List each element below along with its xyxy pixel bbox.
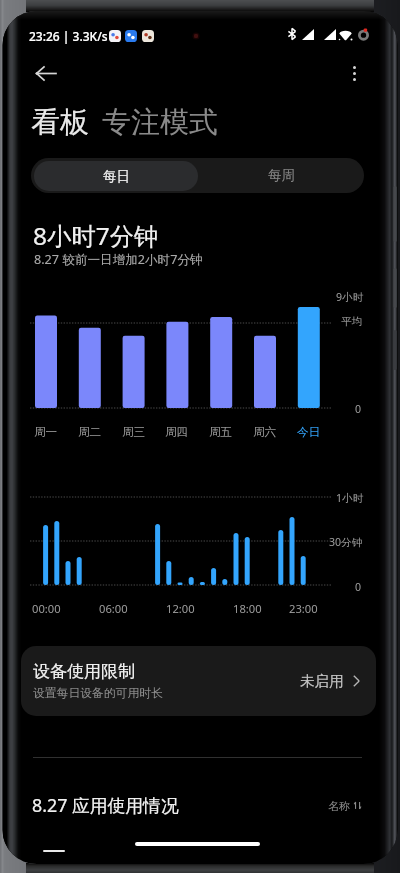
staticText: 06:00: [99, 601, 128, 616]
button[interactable]: Back: [28, 55, 64, 91]
staticText: 周五: [209, 425, 233, 440]
staticText: 周二: [78, 425, 102, 440]
staticText: 名称: [328, 799, 350, 813]
staticText: 每周: [268, 167, 295, 184]
staticText: 设置每日设备的可用时长: [33, 686, 163, 701]
staticText: 平均: [341, 315, 363, 328]
staticText: 周六: [253, 425, 277, 440]
button[interactable]: 专注模式: [102, 104, 218, 141]
staticText: 9小时: [336, 290, 364, 304]
staticText: 23:26 | 3.3K/s: [29, 28, 108, 44]
staticText: 23:00: [289, 601, 318, 616]
button[interactable]: 每日: [34, 161, 198, 191]
staticText: 8小时7分钟: [33, 219, 159, 252]
staticText: 12:00: [166, 601, 195, 616]
staticText: 设备使用限制: [33, 661, 135, 682]
button[interactable]: 名称: [328, 799, 361, 813]
staticText: 0: [355, 580, 362, 594]
staticText: 18:00: [233, 601, 262, 616]
button[interactable]: 每周: [199, 158, 364, 193]
staticText: 30分钟: [329, 535, 363, 549]
staticText: 周一: [34, 425, 58, 440]
staticText: 周三: [122, 425, 146, 440]
staticText: 未启用: [300, 672, 344, 690]
button[interactable]: 设备使用限制: [21, 646, 376, 716]
staticText: 0: [355, 402, 362, 416]
staticText: 00:00: [32, 601, 61, 616]
staticText: 今日: [297, 425, 321, 440]
staticText: 每日: [103, 168, 130, 185]
staticText: 1小时: [336, 491, 364, 505]
staticText: 8.27 较前一日增加2小时7分钟: [34, 251, 203, 268]
staticText: 8.27 应用使用情况: [32, 793, 179, 817]
staticText: 专注模式: [102, 104, 218, 141]
button[interactable]: 看板: [31, 104, 89, 141]
staticText: 看板: [31, 104, 89, 141]
staticText: 周四: [165, 425, 189, 440]
button[interactable]: More options: [338, 57, 370, 89]
